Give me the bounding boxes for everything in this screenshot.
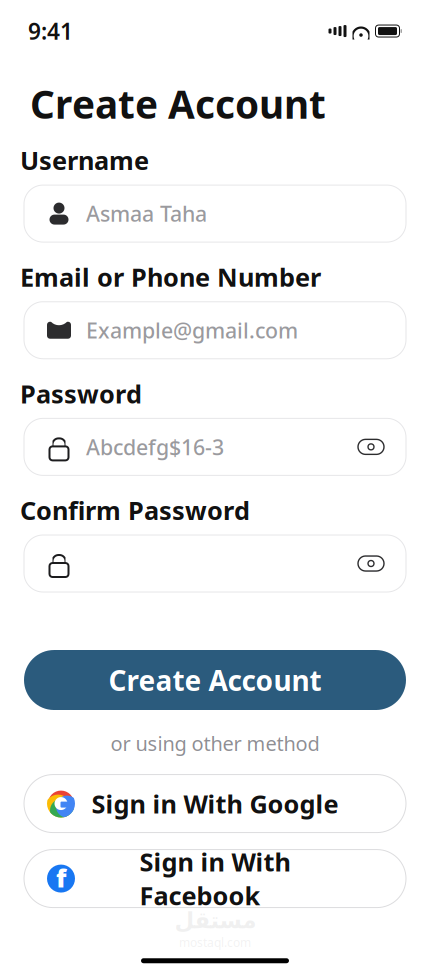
staticText: Username — [20, 143, 149, 177]
staticText: Email or Phone Number — [20, 260, 321, 294]
staticText: Abcdefg$16-3 — [86, 433, 224, 461]
button[interactable]: Show password — [358, 439, 384, 454]
button[interactable] — [24, 535, 406, 592]
staticText: مستقل — [174, 908, 256, 933]
button[interactable]: Create Account — [24, 650, 406, 710]
button[interactable]: Sign in With Google — [24, 775, 406, 833]
staticText: 9:41 — [28, 16, 73, 46]
button[interactable]: Asmaa Taha — [24, 185, 406, 242]
staticText: mostaql.com — [179, 934, 251, 950]
staticText: or using other method — [110, 730, 319, 757]
staticText: Create Account — [30, 78, 326, 129]
button[interactable]: Example@gmail.com — [24, 302, 406, 359]
staticText: Password — [20, 377, 142, 410]
staticText: Sign in With Google — [91, 787, 338, 820]
button[interactable]: Show password — [358, 556, 384, 571]
staticText: Example@gmail.com — [86, 316, 298, 344]
staticText: Create Account — [108, 661, 321, 699]
staticText: Sign in With Facebook — [139, 845, 290, 912]
button[interactable]: Abcdefg$16-3 — [24, 418, 406, 475]
button[interactable]: f — [24, 850, 406, 908]
staticText: Confirm Password — [20, 493, 250, 527]
staticText: Asmaa Taha — [86, 199, 207, 228]
staticText: f — [56, 861, 66, 894]
